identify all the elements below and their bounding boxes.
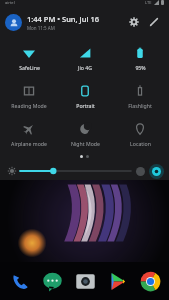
button[interactable]: Portrait	[59, 77, 111, 115]
button[interactable]: Airplane mode	[3, 115, 55, 153]
button[interactable]: Location	[114, 115, 166, 153]
staticText: SafeLine	[19, 64, 40, 71]
staticText: airtel	[5, 0, 15, 5]
button[interactable]: Chrome	[137, 268, 163, 294]
staticText: Mon 11:5 AM	[27, 25, 55, 31]
button[interactable]: Flashlight	[114, 77, 166, 115]
staticText: Reading Mode	[11, 102, 47, 109]
staticText: Airplane mode	[11, 140, 47, 147]
staticText: 1:44 PM • Sun, Jul 16	[27, 14, 99, 24]
staticText: LTE	[145, 0, 152, 5]
button[interactable]: 95%	[114, 39, 166, 77]
button[interactable]: Reading Mode	[3, 77, 55, 115]
staticText: 95%	[135, 64, 146, 71]
button[interactable]: Settings	[125, 13, 143, 31]
button[interactable]: Brightness slider	[20, 164, 131, 178]
button[interactable]: Expand settings	[149, 164, 164, 179]
button[interactable]: Play Store	[104, 268, 130, 294]
button[interactable]: Brightness low	[5, 164, 19, 178]
staticText: Portrait	[76, 102, 95, 109]
staticText: Flashlight	[128, 102, 152, 109]
button[interactable]: Messages	[39, 268, 65, 294]
staticText: Night Mode	[71, 140, 100, 147]
button[interactable]: Night Mode	[59, 115, 111, 153]
staticText: Jio 4G	[78, 64, 92, 71]
button[interactable]: Phone	[7, 268, 33, 294]
button[interactable]: Auto brightness	[133, 164, 147, 178]
staticText: Location	[130, 140, 151, 147]
button[interactable]: Camera	[72, 268, 98, 294]
button[interactable]: Jio 4G	[59, 39, 111, 77]
button[interactable]: SafeLine	[3, 39, 55, 77]
button[interactable]: User account	[5, 14, 22, 31]
button[interactable]: Edit tiles	[145, 13, 163, 31]
